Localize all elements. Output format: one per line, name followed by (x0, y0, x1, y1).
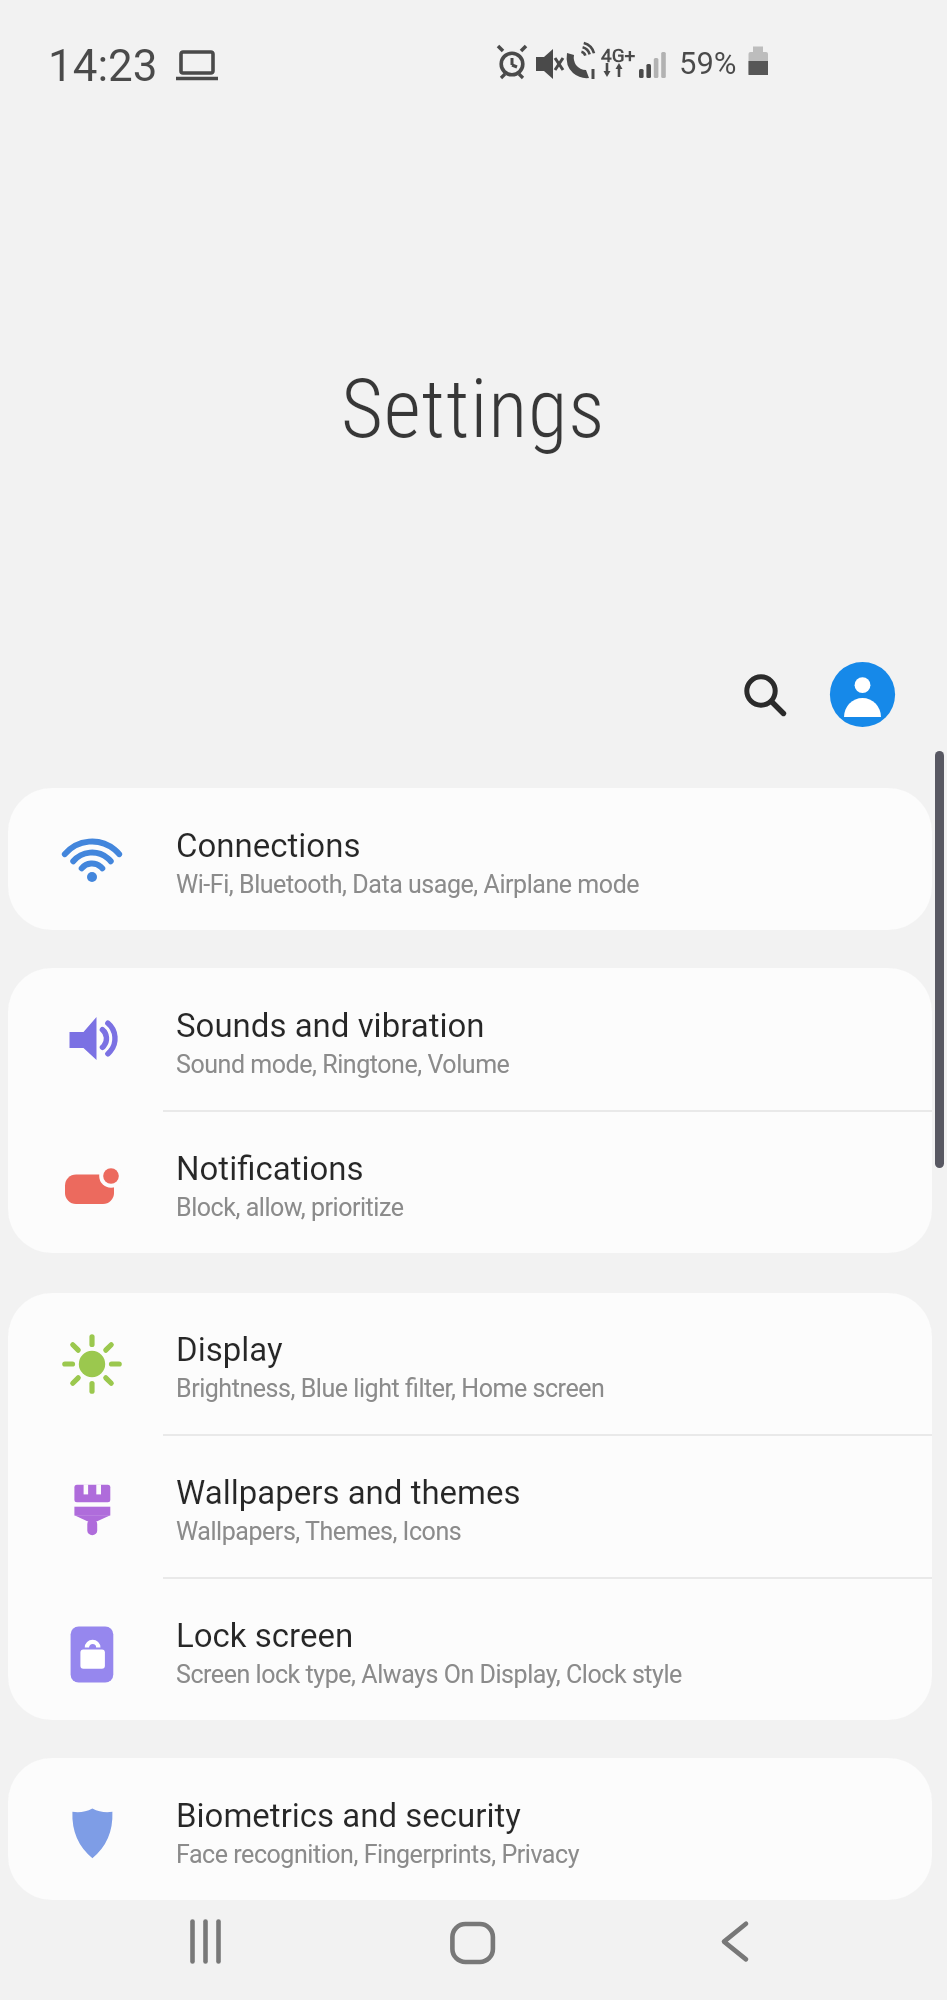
button[interactable]: Sounds and vibration (8, 968, 932, 1110)
staticText: 4G+ (601, 44, 636, 66)
staticText: Wi-Fi, Bluetooth, Data usage, Airplane m… (176, 870, 640, 899)
staticText: Block, allow, prioritize (176, 1193, 404, 1222)
button[interactable] (442, 1910, 502, 1970)
staticText: Settings (341, 362, 606, 457)
staticText: Lock screen (176, 1616, 354, 1655)
staticText: Wallpapers and themes (176, 1473, 521, 1512)
staticText: Biometrics and security (176, 1796, 521, 1835)
staticText: Screen lock type, Always On Display, Clo… (176, 1660, 682, 1689)
staticText: Brightness, Blue light filter, Home scre… (176, 1374, 605, 1403)
button[interactable] (180, 1910, 240, 1970)
button[interactable] (828, 660, 897, 729)
staticText: Wallpapers, Themes, Icons (176, 1517, 462, 1546)
staticText: Face recognition, Fingerprints, Privacy (176, 1840, 580, 1869)
button[interactable]: Wallpapers and themes (8, 1436, 932, 1577)
staticText: 59% (679, 45, 737, 81)
button[interactable]: Biometrics and security (8, 1758, 932, 1900)
staticText: Sounds and vibration (176, 1006, 485, 1045)
button[interactable] (731, 661, 791, 721)
button[interactable]: Connections (8, 788, 932, 930)
button[interactable] (713, 1910, 773, 1970)
staticText: Connections (176, 826, 361, 865)
staticText: Sound mode, Ringtone, Volume (176, 1050, 510, 1079)
staticText: 14:23 (48, 40, 158, 92)
button[interactable]: Lock screen (8, 1579, 932, 1720)
staticText: Display (176, 1330, 283, 1369)
button[interactable]: Display (8, 1293, 932, 1434)
staticText: Notifications (176, 1149, 364, 1188)
button[interactable]: Notifications (8, 1112, 932, 1253)
